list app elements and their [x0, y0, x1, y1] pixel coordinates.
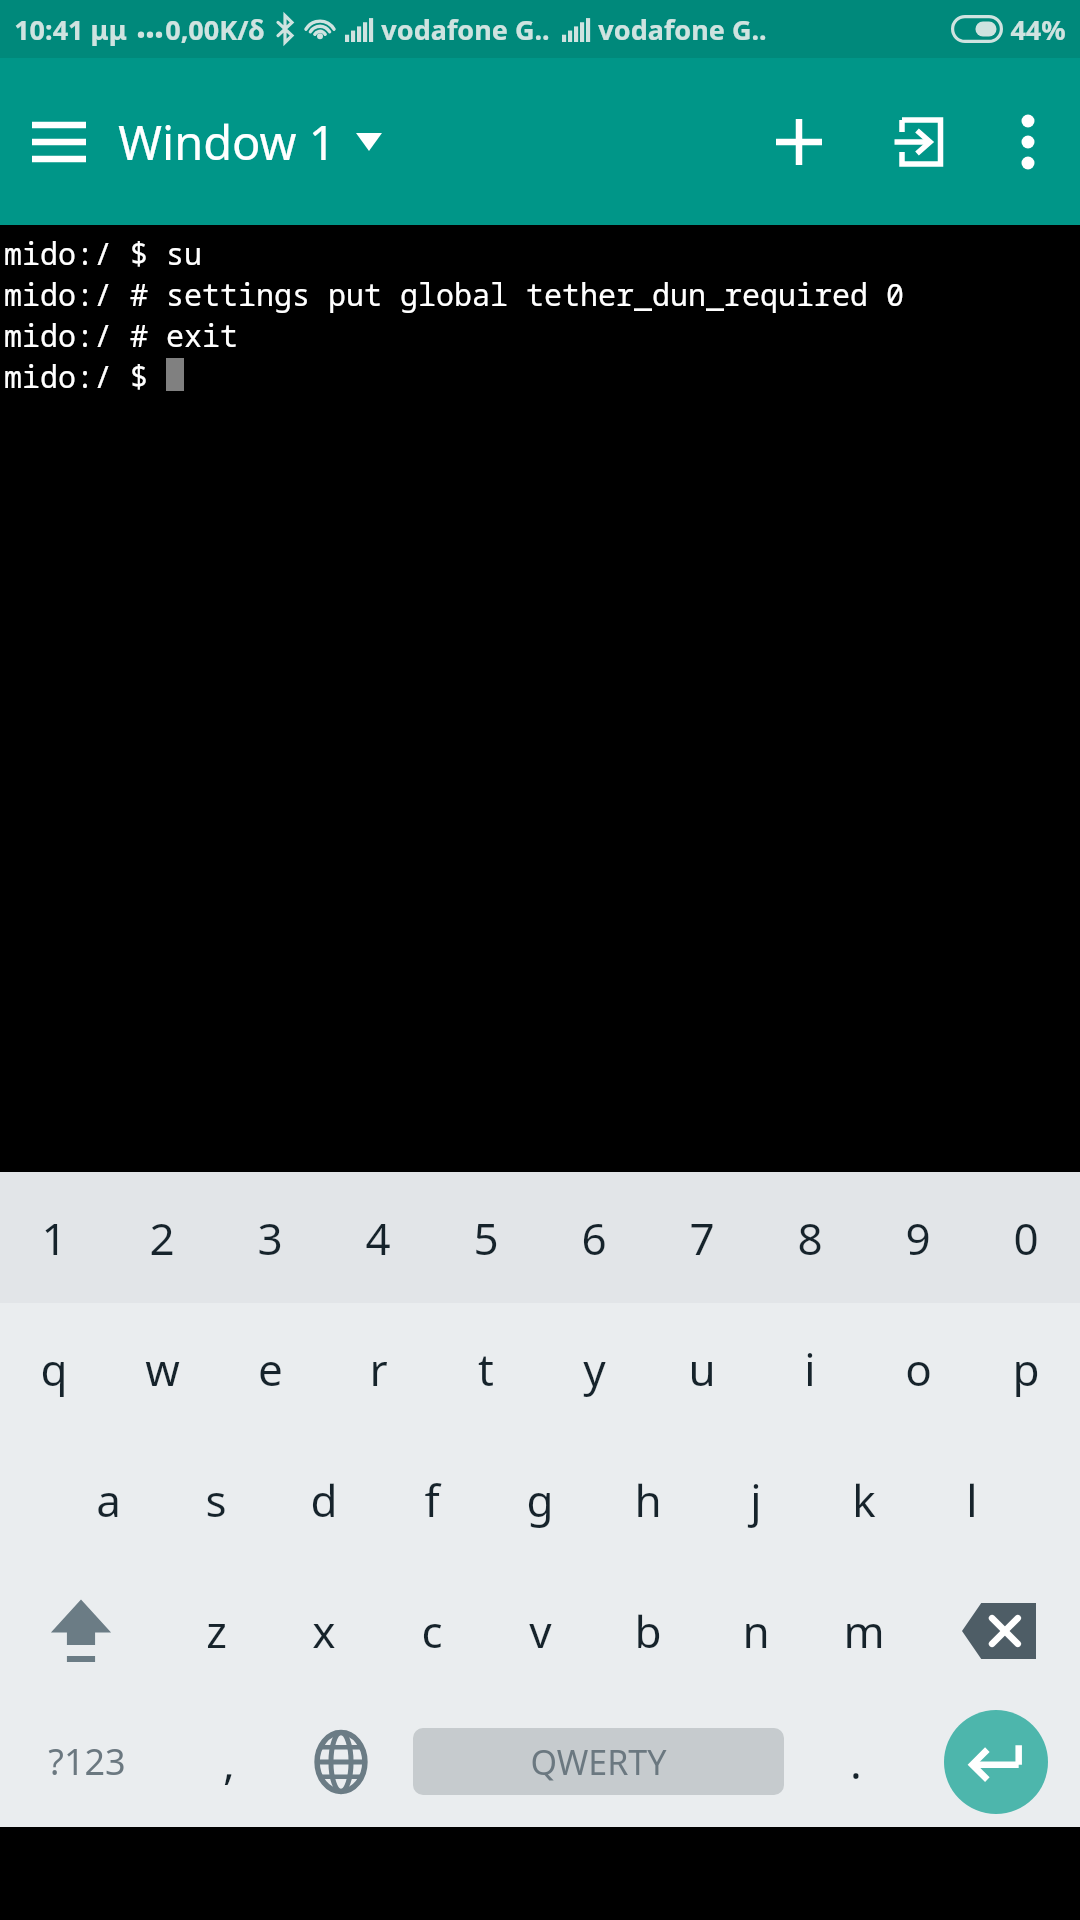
button[interactable]: f	[378, 1434, 486, 1565]
staticText: e	[258, 1339, 283, 1399]
button[interactable]: 8	[756, 1172, 864, 1303]
button[interactable]: 0	[972, 1172, 1080, 1303]
staticText: 10:41 μμ	[14, 11, 127, 48]
button[interactable]: m	[810, 1565, 918, 1696]
button[interactable]: d	[270, 1434, 378, 1565]
button[interactable]: c	[378, 1565, 486, 1696]
button[interactable]: 7	[648, 1172, 756, 1303]
button[interactable]: a	[54, 1434, 162, 1565]
button[interactable]: More options	[976, 58, 1080, 225]
staticText: c	[421, 1601, 443, 1661]
button[interactable]: u	[648, 1303, 756, 1434]
staticText: f	[424, 1470, 440, 1530]
staticText: l	[966, 1470, 978, 1530]
button[interactable]: 4	[324, 1172, 432, 1303]
staticText: 0	[1013, 1208, 1039, 1268]
staticText: r	[369, 1339, 388, 1399]
button[interactable]: ,	[173, 1696, 285, 1827]
button[interactable]: e	[216, 1303, 324, 1434]
staticText: b	[634, 1601, 662, 1661]
button[interactable]: Enter	[912, 1696, 1080, 1827]
staticText: y	[583, 1339, 606, 1399]
staticText: 7	[689, 1208, 715, 1268]
staticText: v	[529, 1601, 552, 1661]
staticText: t	[478, 1339, 494, 1399]
button[interactable]: g	[486, 1434, 594, 1565]
button[interactable]: QWERTY	[413, 1728, 784, 1795]
button[interactable]: v	[486, 1565, 594, 1696]
staticText: o	[905, 1339, 932, 1399]
staticText: mido:/ $ su	[4, 233, 202, 274]
staticText: j	[750, 1470, 762, 1530]
button[interactable]: Window 1	[118, 58, 382, 225]
staticText: vodafone G..	[598, 11, 767, 48]
staticText: 4	[365, 1208, 391, 1268]
staticText: 6	[581, 1208, 607, 1268]
button[interactable]: Toggle keyboard	[858, 58, 976, 225]
button[interactable]: b	[594, 1565, 702, 1696]
button[interactable]: 9	[864, 1172, 972, 1303]
button[interactable]: h	[594, 1434, 702, 1565]
button[interactable]: Shift	[0, 1565, 162, 1696]
button[interactable]: 5	[432, 1172, 540, 1303]
button[interactable]: n	[702, 1565, 810, 1696]
staticText: w	[145, 1339, 180, 1399]
staticText: ?123	[48, 1737, 126, 1786]
staticText: mido:/ $	[4, 356, 166, 397]
staticText: h	[634, 1470, 662, 1530]
staticText: 5	[473, 1208, 499, 1268]
staticText: 3	[257, 1208, 283, 1268]
staticText: QWERTY	[530, 1739, 667, 1785]
button[interactable]: i	[756, 1303, 864, 1434]
button[interactable]: 1	[0, 1172, 108, 1303]
button[interactable]: t	[432, 1303, 540, 1434]
button[interactable]: o	[864, 1303, 972, 1434]
staticText: g	[526, 1470, 554, 1530]
button[interactable]: 6	[540, 1172, 648, 1303]
staticText: q	[40, 1339, 68, 1399]
button[interactable]: s	[162, 1434, 270, 1565]
staticText: u	[688, 1339, 716, 1399]
staticText: d	[310, 1470, 338, 1530]
button[interactable]: q	[0, 1303, 108, 1434]
staticText: p	[1012, 1339, 1040, 1399]
staticText: vodafone G..	[381, 11, 550, 48]
button[interactable]: x	[270, 1565, 378, 1696]
staticText: ,	[223, 1732, 235, 1792]
button[interactable]: New session	[740, 58, 858, 225]
button[interactable]: Open navigation drawer	[0, 58, 118, 225]
staticText: s	[205, 1470, 227, 1530]
button[interactable]: ?123	[0, 1696, 173, 1827]
staticText: n	[742, 1601, 770, 1661]
staticText: k	[852, 1470, 876, 1530]
staticText: 1	[41, 1208, 67, 1268]
button[interactable]: p	[972, 1303, 1080, 1434]
staticText: .	[850, 1732, 862, 1792]
staticText: 0,00K/δ	[165, 11, 265, 48]
button[interactable]: Backspace	[918, 1565, 1080, 1696]
staticText: z	[206, 1601, 227, 1661]
button[interactable]: w	[108, 1303, 216, 1434]
button[interactable]: r	[324, 1303, 432, 1434]
staticText: 8	[797, 1208, 823, 1268]
staticText: m	[843, 1601, 885, 1661]
staticText: 44%	[1010, 11, 1066, 48]
button[interactable]: j	[702, 1434, 810, 1565]
staticText: a	[96, 1470, 121, 1530]
button[interactable]: 2	[108, 1172, 216, 1303]
button[interactable]: 3	[216, 1172, 324, 1303]
button[interactable]: l	[918, 1434, 1026, 1565]
staticText: mido:/ # exit	[4, 315, 238, 356]
staticText: x	[312, 1601, 336, 1661]
staticText: i	[804, 1339, 816, 1399]
button[interactable]: .	[800, 1696, 912, 1827]
staticText: 9	[905, 1208, 931, 1268]
button[interactable]: Change language	[285, 1696, 397, 1827]
button[interactable]: y	[540, 1303, 648, 1434]
staticText: 2	[149, 1208, 175, 1268]
staticText: mido:/ # settings put global tether_dun_…	[4, 274, 904, 315]
button[interactable]: z	[162, 1565, 270, 1696]
button[interactable]: k	[810, 1434, 918, 1565]
staticText: Window 1	[118, 110, 336, 174]
